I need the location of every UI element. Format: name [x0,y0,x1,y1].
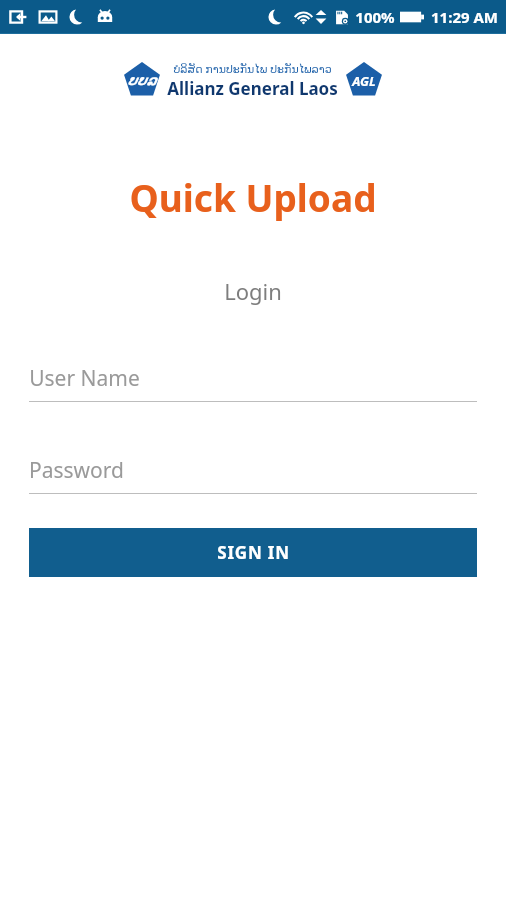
button[interactable]: User Name [29,364,477,402]
staticText: ບບລ [128,73,157,88]
staticText: Login [224,276,282,306]
staticText: 100% [355,7,395,27]
staticText: User Name [29,364,140,393]
staticText: Password [29,456,124,485]
staticText: Allianz General Laos [167,77,338,100]
staticText: ບໍລິສັດ ການປະກັນໄພ ປະກັນໄພລາວ [173,61,332,76]
staticText: AGL [352,72,376,90]
staticText: 11:29 AM [431,7,498,27]
staticText: Quick Upload [129,172,377,222]
staticText: SIGN IN [217,541,290,564]
button[interactable]: SIGN IN [29,528,477,577]
button[interactable]: Password [29,456,477,494]
